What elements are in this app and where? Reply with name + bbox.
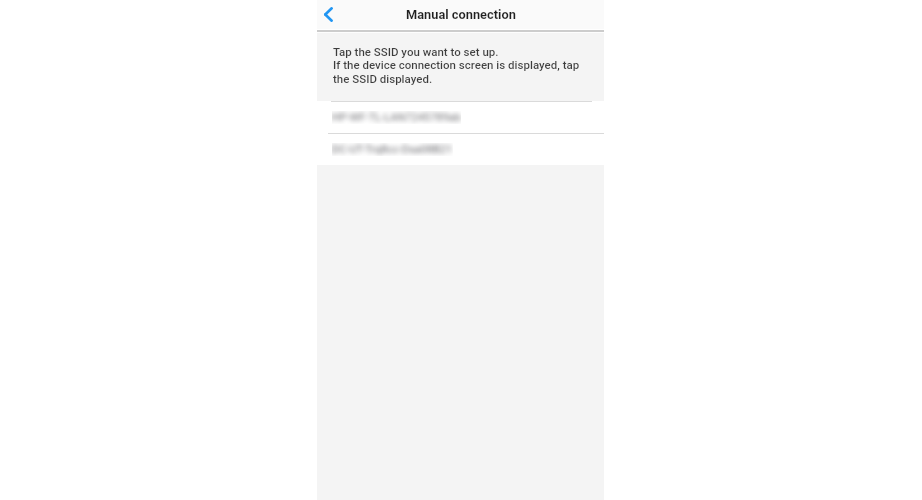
staticText: Manual connection bbox=[406, 7, 516, 22]
staticText: DC-UT-Trq8cc-Dsa08B21 bbox=[332, 143, 453, 156]
button[interactable]: Back bbox=[317, 0, 339, 29]
button[interactable]: DC-UT-Trq8cc-Dsa08B21 bbox=[317, 134, 604, 165]
staticText: Tap the SSID you want to set up. If the … bbox=[333, 45, 580, 85]
staticText: HP-WF-TL-LAN7245789ab bbox=[332, 111, 461, 124]
button[interactable]: HP-WF-TL-LAN7245789ab bbox=[317, 102, 604, 133]
